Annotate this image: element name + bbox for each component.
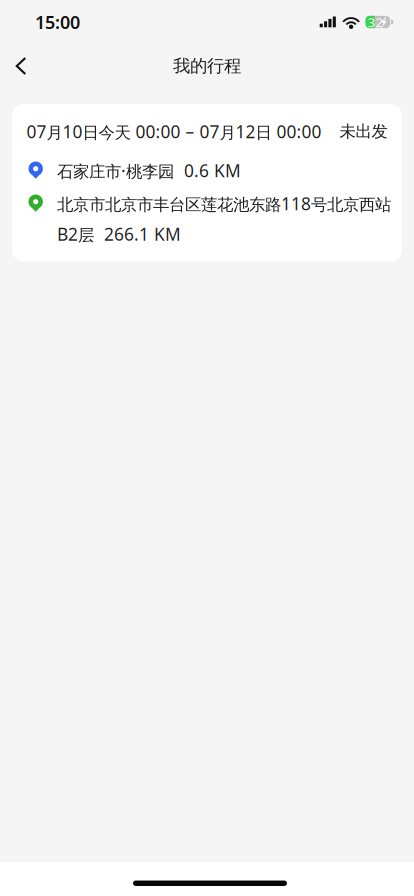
staticText: 07月10日今天 00:00 – 07月12日 00:00 — [26, 120, 321, 143]
staticText: 未出发 — [339, 121, 387, 142]
staticText: 32 — [367, 13, 383, 31]
button[interactable]: Back — [0, 44, 42, 88]
staticText: 15:00 — [35, 10, 80, 34]
staticText: 石家庄市·桃李园 0.6 KM — [57, 159, 241, 182]
staticText: 我的行程 — [173, 55, 241, 77]
staticText: 北京市北京市丰台区莲花池东路118号北京西站B2层 266.1 KM — [57, 192, 391, 245]
